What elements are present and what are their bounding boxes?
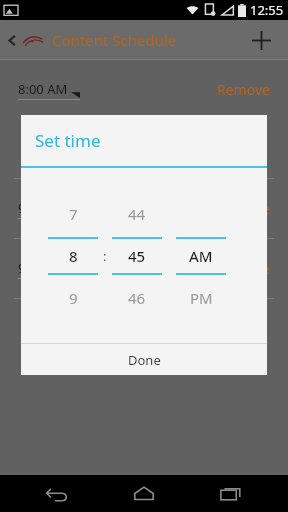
staticText: Remove: [217, 199, 270, 218]
staticText: PM: [190, 288, 213, 308]
button[interactable]: 8:00 AM: [18, 80, 80, 100]
staticText: Set time: [35, 129, 101, 152]
button[interactable]: 7: [48, 197, 98, 315]
button[interactable]: 9:00 AM: [18, 199, 80, 219]
staticText: 8: [69, 246, 78, 266]
button[interactable]: 8:00 AM: [0, 60, 288, 119]
staticText: 12:55: [250, 1, 284, 19]
staticText: Content Schedule: [52, 30, 177, 50]
button[interactable]: Remove: [217, 80, 270, 99]
staticText: Remove: [217, 259, 270, 278]
staticText: Done: [128, 351, 161, 369]
staticText: 46: [128, 288, 146, 308]
button[interactable]: Recent apps: [201, 475, 261, 512]
button[interactable]: 9:30 AM: [0, 239, 288, 298]
staticText: 9: [69, 288, 78, 308]
button[interactable]: 44: [112, 197, 162, 315]
staticText: AM: [189, 246, 213, 266]
staticText: 8:00 AM: [18, 80, 68, 98]
button[interactable]: 9:00 AM: [0, 179, 288, 238]
button[interactable]: Remove: [217, 259, 270, 278]
button[interactable]: Home: [114, 475, 174, 512]
button[interactable]: Done: [21, 344, 267, 375]
staticText: :: [103, 247, 107, 265]
button[interactable]: Back: [4, 20, 20, 60]
staticText: 7: [69, 204, 78, 224]
staticText: 44: [128, 204, 146, 224]
button[interactable]: Add: [244, 23, 278, 57]
staticText: 9:30 AM: [18, 259, 68, 277]
button[interactable]: Remove: [217, 199, 270, 218]
staticText: Remove: [217, 80, 270, 99]
staticText: 9:00 AM: [18, 199, 68, 217]
button[interactable]: Back: [27, 475, 87, 512]
staticText: 45: [128, 246, 146, 266]
button[interactable]: 9:30 AM: [18, 259, 80, 279]
button[interactable]: AM: [176, 197, 226, 315]
